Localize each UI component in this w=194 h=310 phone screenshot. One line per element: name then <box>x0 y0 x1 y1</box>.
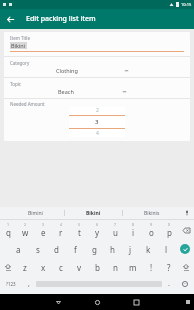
staticText: 9 <box>150 222 153 227</box>
staticText: w <box>22 227 29 238</box>
button[interactable]: Home <box>89 294 105 310</box>
button[interactable]: 2 <box>17 220 34 240</box>
staticText: . <box>168 279 170 289</box>
button[interactable]: 5 <box>70 220 88 240</box>
staticText: k <box>146 244 151 255</box>
staticText: 3 <box>42 222 45 227</box>
staticText: , <box>28 279 30 289</box>
button[interactable]: Shift right <box>178 258 194 276</box>
staticText: r <box>59 227 63 238</box>
staticText: ?123 <box>6 281 16 287</box>
staticText: x <box>41 262 46 273</box>
staticText: Bikinis <box>144 210 160 217</box>
staticText: 5 <box>78 222 81 227</box>
staticText: 10:15 <box>181 2 192 7</box>
staticText: 7 <box>114 222 117 227</box>
button[interactable]: 4 <box>52 220 70 240</box>
button[interactable]: Emoji <box>176 276 194 292</box>
staticText: i <box>132 227 135 238</box>
button[interactable]: 7 <box>106 220 124 240</box>
staticText: c <box>59 262 63 273</box>
staticText: u <box>113 227 118 238</box>
button[interactable]: n <box>106 258 124 276</box>
button[interactable]: 3 <box>34 220 52 240</box>
button[interactable]: Back <box>0 9 20 29</box>
staticText: b <box>95 262 100 273</box>
staticText: 0 <box>168 222 171 227</box>
button[interactable]: ! <box>142 258 160 276</box>
button[interactable]: d <box>47 240 66 258</box>
button[interactable]: Bikini <box>65 207 122 219</box>
button[interactable]: Recents <box>128 294 144 310</box>
staticText: Bimini <box>28 210 43 217</box>
staticText: Clothing <box>56 67 78 74</box>
staticText: 8 <box>132 222 135 227</box>
button[interactable]: Bimini <box>6 207 64 219</box>
staticText: 2 <box>24 222 27 227</box>
staticText: z <box>23 262 27 273</box>
staticText: h <box>110 244 115 255</box>
button[interactable]: 6 <box>88 220 106 240</box>
button[interactable]: . <box>162 276 176 292</box>
staticText: ! <box>150 262 153 273</box>
button[interactable]: f <box>66 240 85 258</box>
staticText: y <box>95 227 100 238</box>
button[interactable]: k <box>139 240 157 258</box>
staticText: 1 <box>7 222 10 227</box>
staticText: 4 <box>60 222 63 227</box>
staticText: 6 <box>96 222 99 227</box>
button[interactable]: m <box>124 258 142 276</box>
button[interactable]: 2 <box>69 107 125 137</box>
button[interactable]: v <box>70 258 88 276</box>
button[interactable]: Beach <box>4 88 190 95</box>
staticText: Beach <box>58 88 74 95</box>
button[interactable]: Bikini <box>10 42 184 52</box>
staticText: t <box>78 227 81 238</box>
staticText: Bikini <box>11 42 26 49</box>
staticText: Category <box>10 60 30 66</box>
button[interactable]: g <box>85 240 103 258</box>
staticText: j <box>129 244 132 255</box>
staticText: 4 <box>96 130 99 137</box>
staticText: n <box>113 262 118 273</box>
button[interactable]: z <box>16 258 34 276</box>
button[interactable]: ? <box>160 258 178 276</box>
staticText: o <box>149 227 154 238</box>
button[interactable]: h <box>103 240 121 258</box>
button[interactable]: , <box>22 276 36 292</box>
staticText: s <box>36 244 40 255</box>
button[interactable]: Back <box>50 294 66 310</box>
button[interactable]: Bikinis <box>123 207 180 219</box>
button[interactable]: Clothing <box>4 67 190 74</box>
button[interactable]: 0 <box>160 220 178 240</box>
staticText: d <box>54 244 59 255</box>
button[interactable]: Enter <box>175 240 194 258</box>
staticText: Item Title <box>10 35 31 41</box>
button[interactable]: 9 <box>142 220 160 240</box>
staticText: Bikini <box>86 210 101 217</box>
staticText: l <box>165 244 168 255</box>
staticText: f <box>74 244 77 255</box>
button[interactable]: Voice input <box>180 207 194 219</box>
button[interactable]: 8 <box>124 220 142 240</box>
staticText: p <box>167 227 172 238</box>
staticText: Needed Amount <box>10 101 45 107</box>
button[interactable]: a <box>9 240 28 258</box>
button[interactable]: Shift <box>0 258 16 276</box>
staticText: Topic <box>10 81 21 87</box>
button[interactable]: Backspace <box>178 220 194 240</box>
staticText: ? <box>167 262 171 273</box>
button[interactable]: b <box>88 258 106 276</box>
staticText: q <box>6 227 11 238</box>
button[interactable]: 1 <box>0 220 17 240</box>
staticText: g <box>92 244 97 255</box>
button[interactable]: l <box>157 240 175 258</box>
button[interactable]: j <box>121 240 139 258</box>
button[interactable]: ?123 <box>0 276 22 292</box>
staticText: 3 <box>95 118 99 126</box>
button[interactable]: s <box>28 240 47 258</box>
button[interactable]: x <box>34 258 52 276</box>
button[interactable]: c <box>52 258 70 276</box>
